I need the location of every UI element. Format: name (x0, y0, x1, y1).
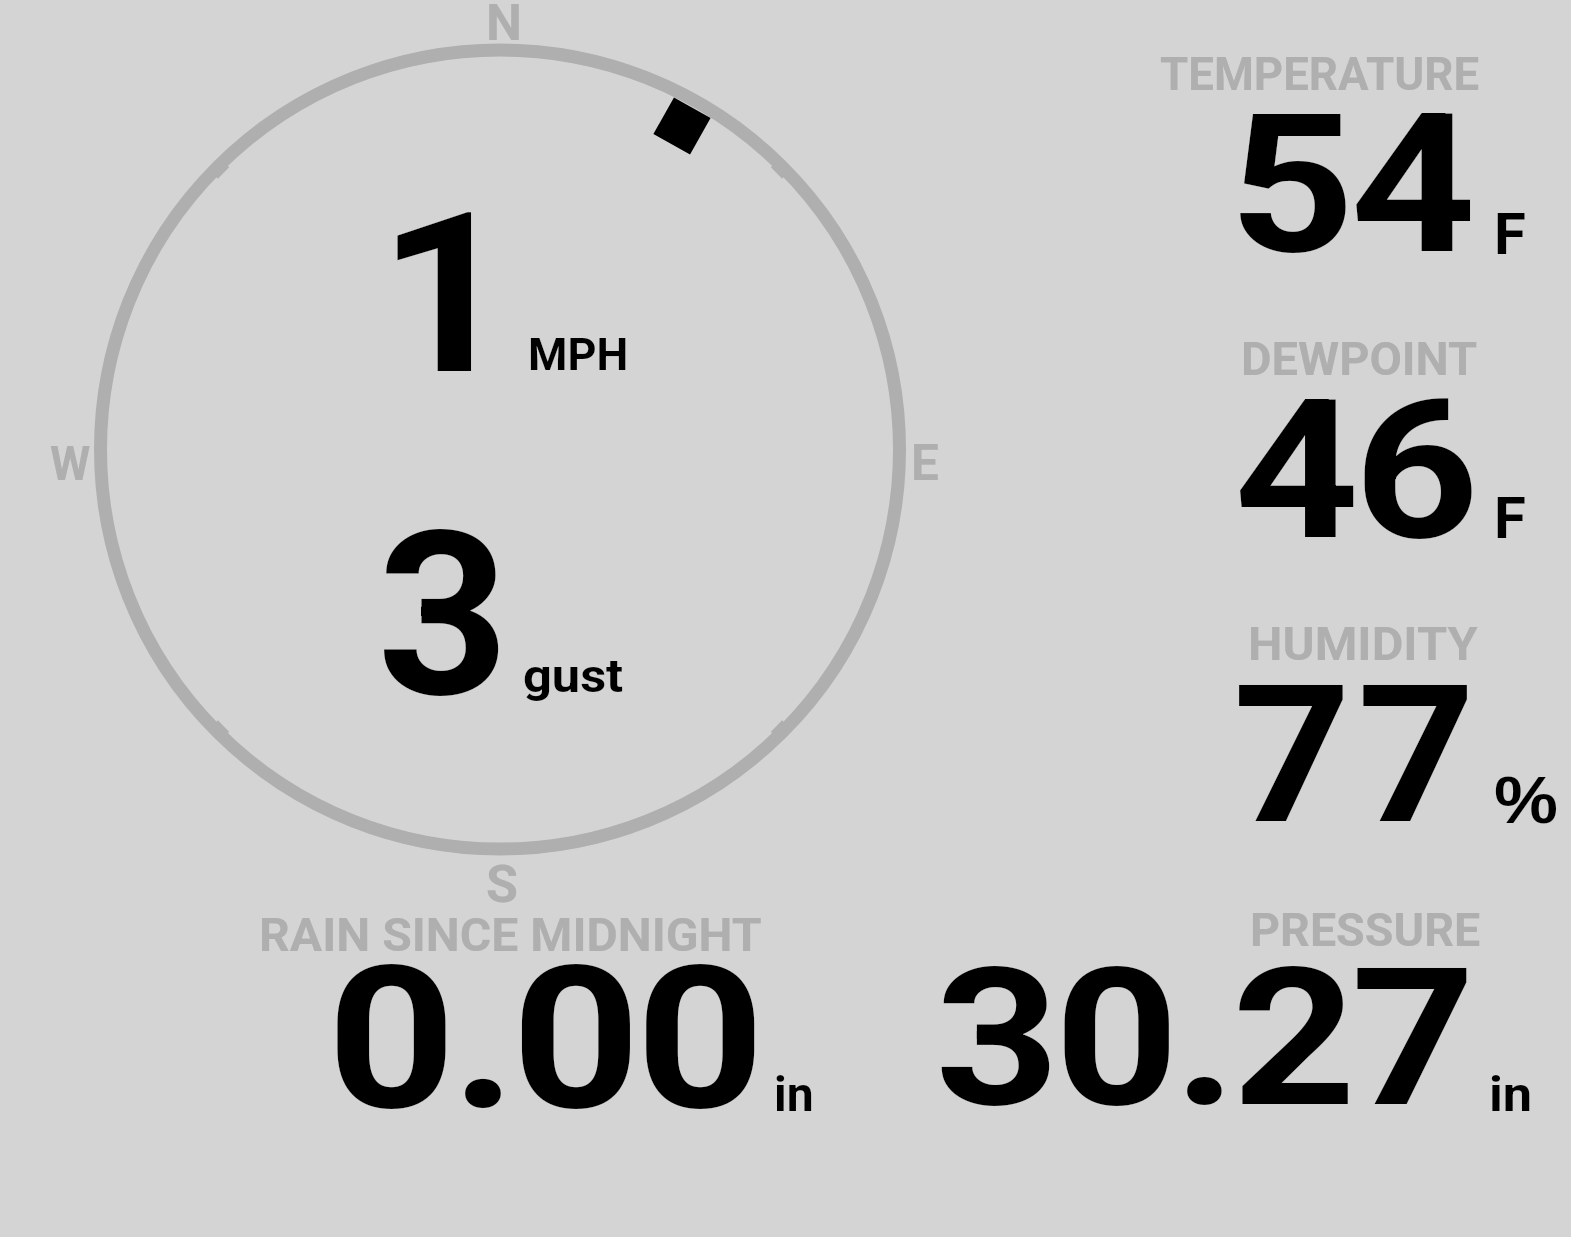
staticText: 3 (377, 482, 509, 749)
staticText: gust (523, 648, 624, 703)
button[interactable]: Temperature 54 degrees Fahrenheit (1150, 40, 1571, 275)
staticText: 77 (1233, 644, 1482, 868)
staticText: RAIN SINCE MIDNIGHT (259, 908, 762, 962)
staticText: PRESSURE (1250, 903, 1481, 957)
button[interactable]: Pressure 30.27 inches (900, 900, 1560, 1130)
staticText: N (486, 0, 523, 53)
button[interactable]: Rain since midnight 0.00 inches (240, 900, 840, 1130)
staticText: S (486, 855, 519, 915)
staticText: in (1489, 1066, 1533, 1122)
button[interactable]: Wind speed and direction (20, 0, 980, 910)
staticText: MPH (528, 328, 629, 381)
staticText: F (1494, 200, 1526, 268)
staticText: 1 (378, 164, 514, 425)
button[interactable]: Dewpoint 46 degrees Fahrenheit (1150, 325, 1571, 560)
staticText: 54 (1229, 72, 1472, 298)
button[interactable]: Humidity 77 percent (1150, 610, 1571, 845)
staticText: 30.27 (935, 926, 1471, 1151)
staticText: F (1494, 484, 1526, 552)
staticText: W (50, 435, 90, 491)
staticText: in (774, 1066, 814, 1122)
other: Wind direction north-north-east (653, 97, 711, 155)
staticText: 46 (1234, 358, 1475, 584)
staticText: % (1494, 763, 1558, 837)
staticText: DEWPOINT (1241, 332, 1478, 386)
staticText: 0.00 (327, 923, 761, 1155)
staticText: E (911, 434, 940, 493)
staticText: TEMPERATURE (1160, 47, 1479, 101)
staticText: HUMIDITY (1248, 617, 1478, 671)
